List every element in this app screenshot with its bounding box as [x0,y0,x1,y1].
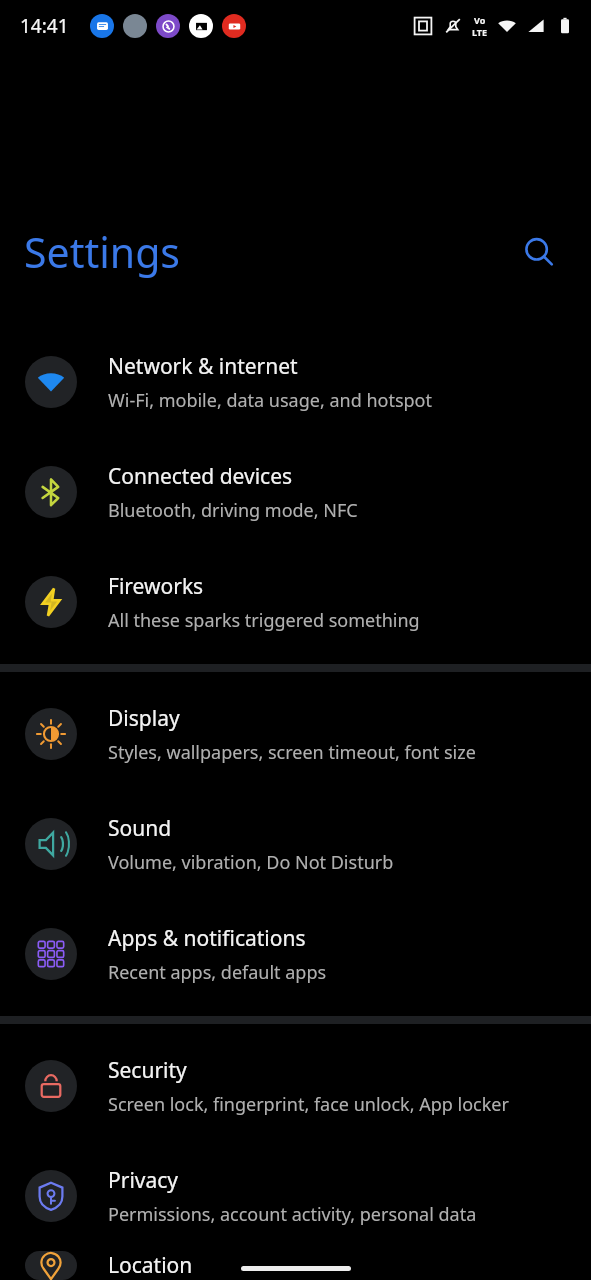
button[interactable]: Privacy [0,1141,591,1251]
staticText: LTE [472,26,488,38]
staticText: Wi-Fi, mobile, data usage, and hotspot [108,388,432,413]
button[interactable]: Network & internet [0,327,591,437]
button[interactable]: Location [0,1251,591,1280]
staticText: Apps & notifications [108,924,306,953]
button[interactable]: Display [0,679,591,789]
staticText: Security [108,1056,187,1085]
button[interactable]: Connected devices [0,437,591,547]
staticText: Bluetooth, driving mode, NFC [108,498,358,523]
button[interactable]: Sound [0,789,591,899]
staticText: Settings [24,224,181,280]
button[interactable]: Search settings [515,228,563,276]
staticText: 14:41 [20,13,69,39]
button[interactable]: Fireworks [0,547,591,657]
staticText: Volume, vibration, Do Not Disturb [108,850,394,875]
staticText: Vo [474,14,486,26]
staticText: Styles, wallpapers, screen timeout, font… [108,740,476,765]
button[interactable]: Apps & notifications [0,899,591,1009]
staticText: Permissions, account activity, personal … [108,1202,477,1227]
staticText: Fireworks [108,572,204,601]
staticText: Recent apps, default apps [108,960,327,985]
staticText: Network & internet [108,352,298,381]
staticText: Sound [108,814,172,843]
staticText: Connected devices [108,462,293,491]
button[interactable]: Security [0,1031,591,1141]
staticText: Location [108,1251,193,1280]
staticText: Privacy [108,1166,179,1195]
staticText: Screen lock, fingerprint, face unlock, A… [108,1092,509,1117]
staticText: All these sparks triggered something [108,608,420,633]
staticText: Display [108,704,180,733]
